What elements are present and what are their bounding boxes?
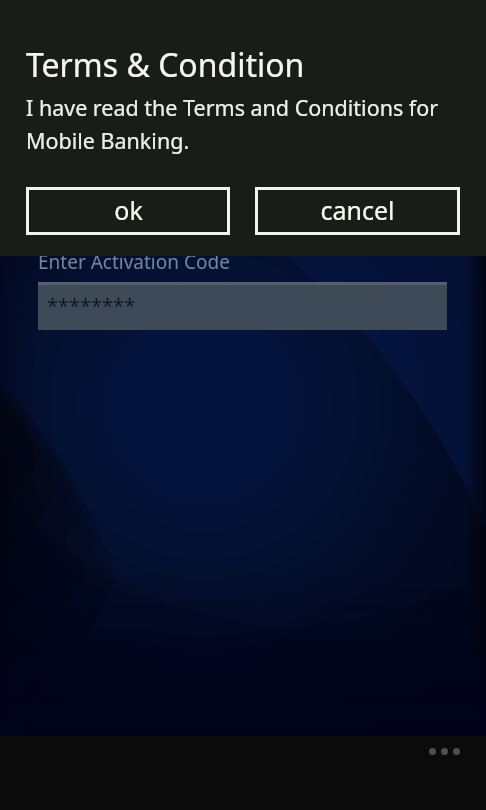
button[interactable]: cancel xyxy=(255,187,460,235)
staticText: ******** xyxy=(47,292,136,319)
button[interactable]: ******** xyxy=(38,282,447,330)
staticText: I have read the Terms and Conditions for… xyxy=(26,93,456,155)
staticText: cancel xyxy=(320,193,395,227)
staticText: Terms & Condition xyxy=(26,43,305,87)
staticText: Enter Activation Code xyxy=(38,249,230,275)
button[interactable]: More options xyxy=(429,740,460,762)
staticText: ok xyxy=(114,193,143,227)
button[interactable]: ok xyxy=(26,187,230,235)
